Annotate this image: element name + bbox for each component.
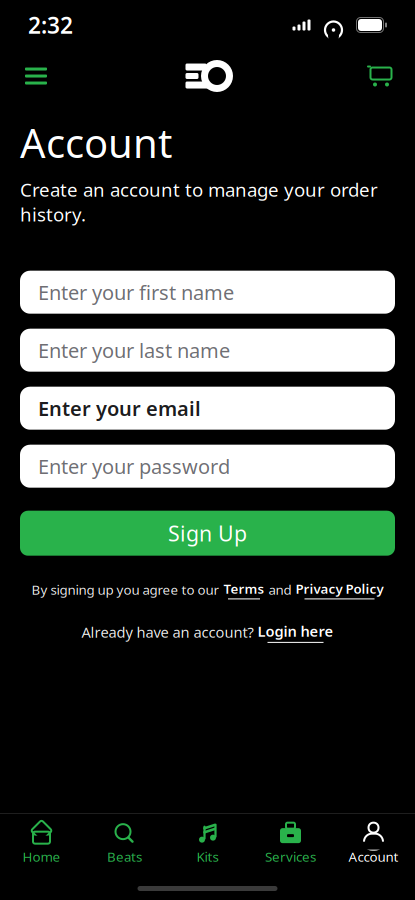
staticText: Kits	[196, 848, 218, 865]
button[interactable]: Kits	[166, 821, 249, 867]
staticText: and	[268, 581, 291, 598]
button[interactable]: Sign Up	[20, 511, 395, 556]
staticText: Account	[348, 848, 398, 865]
staticText: Home	[22, 848, 60, 865]
button[interactable]: Services	[249, 821, 332, 867]
staticText: Login here	[257, 621, 333, 641]
staticText: Create an account to manage your order h…	[20, 177, 378, 227]
staticText: Enter your last name	[38, 337, 230, 363]
button[interactable]: Terms	[223, 580, 264, 599]
button[interactable]: Menu	[14, 54, 58, 98]
staticText: Account	[20, 116, 172, 169]
staticText: Enter your email	[38, 395, 201, 421]
staticText: Terms	[223, 580, 264, 597]
button[interactable]: Enter your email	[20, 387, 395, 430]
staticText: Privacy Policy	[295, 580, 383, 597]
button[interactable]: Home	[0, 821, 83, 867]
button[interactable]: Login here	[257, 621, 333, 643]
staticText: 2:32	[28, 10, 73, 40]
button[interactable]: Enter your last name	[20, 329, 395, 372]
staticText: By signing up you agree to our	[31, 581, 219, 598]
staticText: Enter your password	[38, 453, 230, 479]
button[interactable]: Privacy Policy	[295, 580, 383, 599]
staticText: Enter your first name	[38, 279, 234, 305]
button[interactable]: 50 Home	[185, 54, 229, 98]
staticText: Beats	[107, 848, 142, 865]
staticText: Already have an account?	[81, 622, 253, 642]
button[interactable]: Beats	[83, 821, 166, 867]
button[interactable]: Cart	[357, 54, 401, 98]
button[interactable]: Enter your first name	[20, 271, 395, 314]
button[interactable]: Enter your password	[20, 445, 395, 488]
button[interactable]: Account	[332, 821, 415, 867]
staticText: Services	[265, 848, 316, 865]
staticText: Sign Up	[168, 519, 247, 547]
